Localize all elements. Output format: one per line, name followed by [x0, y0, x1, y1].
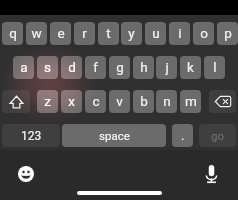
button[interactable]: q [2, 22, 23, 45]
button[interactable]: u [145, 22, 166, 45]
button[interactable]: p [217, 22, 238, 45]
button[interactable]: go [199, 124, 236, 147]
staticText: w [31, 25, 42, 41]
button[interactable]: y [121, 22, 142, 45]
staticText: y [128, 25, 135, 41]
button[interactable]: e [50, 22, 71, 45]
button[interactable]: Shift [2, 90, 30, 113]
button[interactable]: z [37, 90, 58, 113]
button[interactable]: v [109, 90, 130, 113]
button[interactable]: d [61, 56, 82, 79]
button[interactable]: Voice input [199, 162, 223, 186]
staticText: p [224, 25, 232, 41]
staticText: l [213, 59, 217, 75]
button[interactable]: c [85, 90, 106, 113]
button[interactable]: x [61, 90, 82, 113]
staticText: h [140, 59, 148, 75]
staticText: d [68, 59, 76, 75]
button[interactable]: j [156, 56, 177, 79]
button[interactable]: 123 [2, 124, 60, 147]
staticText: t [106, 25, 111, 41]
staticText: e [57, 25, 65, 41]
staticText: q [9, 25, 17, 41]
button[interactable]: a [13, 56, 34, 79]
staticText: s [44, 59, 51, 75]
staticText: f [93, 59, 98, 75]
button[interactable]: s [37, 56, 58, 79]
button[interactable]: space [62, 124, 166, 147]
staticText: x [68, 93, 75, 109]
staticText: r [82, 25, 87, 41]
button[interactable]: m [180, 90, 201, 113]
button[interactable]: o [193, 22, 214, 45]
button[interactable]: t [98, 22, 119, 45]
button[interactable]: r [74, 22, 95, 45]
staticText: . [181, 128, 185, 143]
button[interactable]: . [172, 124, 193, 147]
staticText: j [165, 59, 169, 75]
button[interactable]: h [133, 56, 154, 79]
button[interactable]: Emoji keyboard [14, 162, 38, 186]
staticText: m [185, 93, 197, 109]
staticText: z [44, 93, 51, 109]
button[interactable]: f [85, 56, 106, 79]
staticText: o [200, 25, 208, 41]
staticText: i [178, 25, 182, 41]
button[interactable]: i [169, 22, 190, 45]
button[interactable]: l [204, 56, 225, 79]
button[interactable]: b [133, 90, 154, 113]
button[interactable]: w [26, 22, 47, 45]
staticText: u [152, 25, 160, 41]
staticText: space [99, 129, 130, 142]
button[interactable]: Backspace [209, 90, 236, 113]
button[interactable]: n [156, 90, 177, 113]
staticText: go [211, 129, 225, 142]
button[interactable]: g [109, 56, 130, 79]
staticText: 123 [21, 129, 42, 143]
staticText: g [116, 59, 124, 75]
staticText: n [163, 93, 171, 109]
staticText: a [20, 59, 28, 75]
staticText: v [116, 93, 123, 109]
button[interactable]: k [180, 56, 201, 79]
staticText: b [140, 93, 148, 109]
staticText: c [92, 93, 100, 109]
staticText: k [187, 59, 194, 75]
